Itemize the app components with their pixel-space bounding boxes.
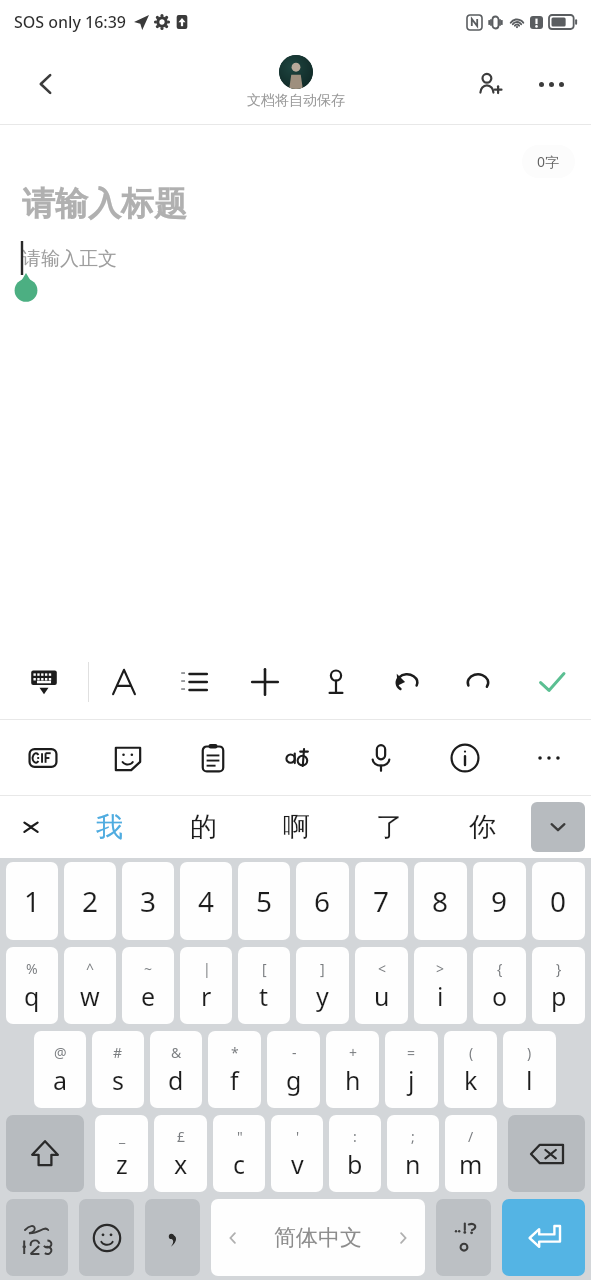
button[interactable]: / (445, 1115, 497, 1192)
button[interactable]: GIF (0, 720, 85, 795)
staticText: e (141, 979, 156, 1013)
button[interactable]: | (180, 947, 232, 1024)
staticText: l (526, 1063, 533, 1097)
button[interactable]: Punctuation (436, 1199, 491, 1276)
button[interactable]: [ (238, 947, 290, 1024)
button[interactable]: Emoji (79, 1199, 134, 1276)
button[interactable]: ~ (122, 947, 174, 1024)
button[interactable]: ; (387, 1115, 439, 1192)
button[interactable]: Redo (442, 644, 513, 719)
button[interactable]: Font style (89, 644, 159, 719)
button[interactable]: + (326, 1031, 379, 1108)
button[interactable]: " (213, 1115, 265, 1192)
button[interactable]: Numbers and symbols (6, 1199, 68, 1276)
button[interactable]: % (6, 947, 58, 1024)
button[interactable]: Close suggestions (0, 796, 62, 858)
button[interactable]: 0字 (522, 145, 575, 178)
staticText: 0字 (537, 152, 560, 171)
button[interactable]: 2 (64, 862, 116, 940)
staticText: % (26, 959, 38, 978)
staticText: _ (119, 1127, 126, 1146)
staticText: @ (54, 1043, 67, 1062)
staticText: m (459, 1147, 483, 1181)
button[interactable]: = (385, 1031, 438, 1108)
button[interactable]: Hide keyboard (0, 644, 88, 719)
button[interactable]: Voice (339, 720, 423, 795)
button[interactable]: Add collaborator (465, 60, 513, 108)
button[interactable]: ) (503, 1031, 556, 1108)
staticText: r (201, 979, 212, 1013)
button[interactable]: Undo (371, 644, 442, 719)
staticText: ] (320, 959, 325, 978)
staticText: " (237, 1127, 243, 1146)
button[interactable]: _ (95, 1115, 148, 1192)
staticText: 8 (432, 882, 449, 920)
button[interactable]: 了 (343, 796, 436, 858)
button[interactable]: 9 (473, 862, 526, 940)
button[interactable]: - (267, 1031, 320, 1108)
staticText: + (349, 1043, 358, 1062)
button[interactable]: Shift (6, 1115, 84, 1192)
staticText: 2 (82, 882, 99, 920)
button[interactable]: Back (22, 60, 70, 108)
button[interactable]: : (329, 1115, 381, 1192)
button[interactable]: @ (34, 1031, 86, 1108)
button[interactable]: 8 (414, 862, 467, 940)
staticText: g (286, 1063, 302, 1097)
button[interactable]: 7 (355, 862, 408, 940)
button[interactable]: * (208, 1031, 261, 1108)
button[interactable]: Enter (502, 1199, 585, 1276)
button[interactable]: 我 (62, 796, 156, 858)
button[interactable]: Backspace (508, 1115, 585, 1192)
button[interactable]: 0 (532, 862, 585, 940)
staticText: z (116, 1147, 128, 1181)
staticText: 6 (314, 882, 331, 920)
button[interactable]: Comma (145, 1199, 200, 1276)
staticText: [ (262, 959, 267, 978)
staticText: y (316, 979, 329, 1013)
button[interactable]: ^ (64, 947, 116, 1024)
button[interactable]: Stickers (85, 720, 170, 795)
button[interactable]: 6 (296, 862, 349, 940)
staticText: 5 (256, 882, 273, 920)
staticText: 0 (550, 882, 567, 920)
button[interactable]: Language (255, 720, 339, 795)
staticText: ( (469, 1043, 474, 1062)
button[interactable]: ' (271, 1115, 323, 1192)
button[interactable]: 1 (6, 862, 58, 940)
button[interactable]: # (92, 1031, 144, 1108)
button[interactable]: Insert (229, 644, 300, 719)
staticText: ; (411, 1127, 415, 1146)
button[interactable]: Voice input (300, 644, 371, 719)
button[interactable]: List (159, 644, 229, 719)
button[interactable]: Done (513, 644, 591, 719)
button[interactable]: More (507, 720, 591, 795)
staticText: 我 (96, 810, 123, 844)
staticText: < (378, 959, 387, 978)
button[interactable]: > (414, 947, 467, 1024)
staticText: p (551, 979, 567, 1013)
button[interactable]: { (473, 947, 526, 1024)
button[interactable]: < (355, 947, 408, 1024)
button[interactable]: Expand candidates (531, 802, 585, 852)
button[interactable]: 你 (436, 796, 529, 858)
button[interactable]: 啊 (250, 796, 343, 858)
button[interactable]: More options (527, 60, 575, 108)
button[interactable]: ( (444, 1031, 497, 1108)
button[interactable]: 的 (156, 796, 250, 858)
button[interactable]: Info (423, 720, 507, 795)
button[interactable]: 4 (180, 862, 232, 940)
button[interactable]: 5 (238, 862, 290, 940)
staticText: | (203, 959, 211, 978)
staticText: x (174, 1147, 188, 1181)
button[interactable]: & (150, 1031, 202, 1108)
button[interactable]: £ (154, 1115, 207, 1192)
staticText: - (292, 1043, 297, 1062)
button[interactable]: } (532, 947, 585, 1024)
button[interactable]: ] (296, 947, 349, 1024)
staticText: u (374, 979, 390, 1013)
button[interactable]: Clipboard (170, 720, 255, 795)
button[interactable]: 简体中文 (211, 1199, 425, 1276)
button[interactable]: Profile (279, 55, 313, 89)
button[interactable]: 3 (122, 862, 174, 940)
